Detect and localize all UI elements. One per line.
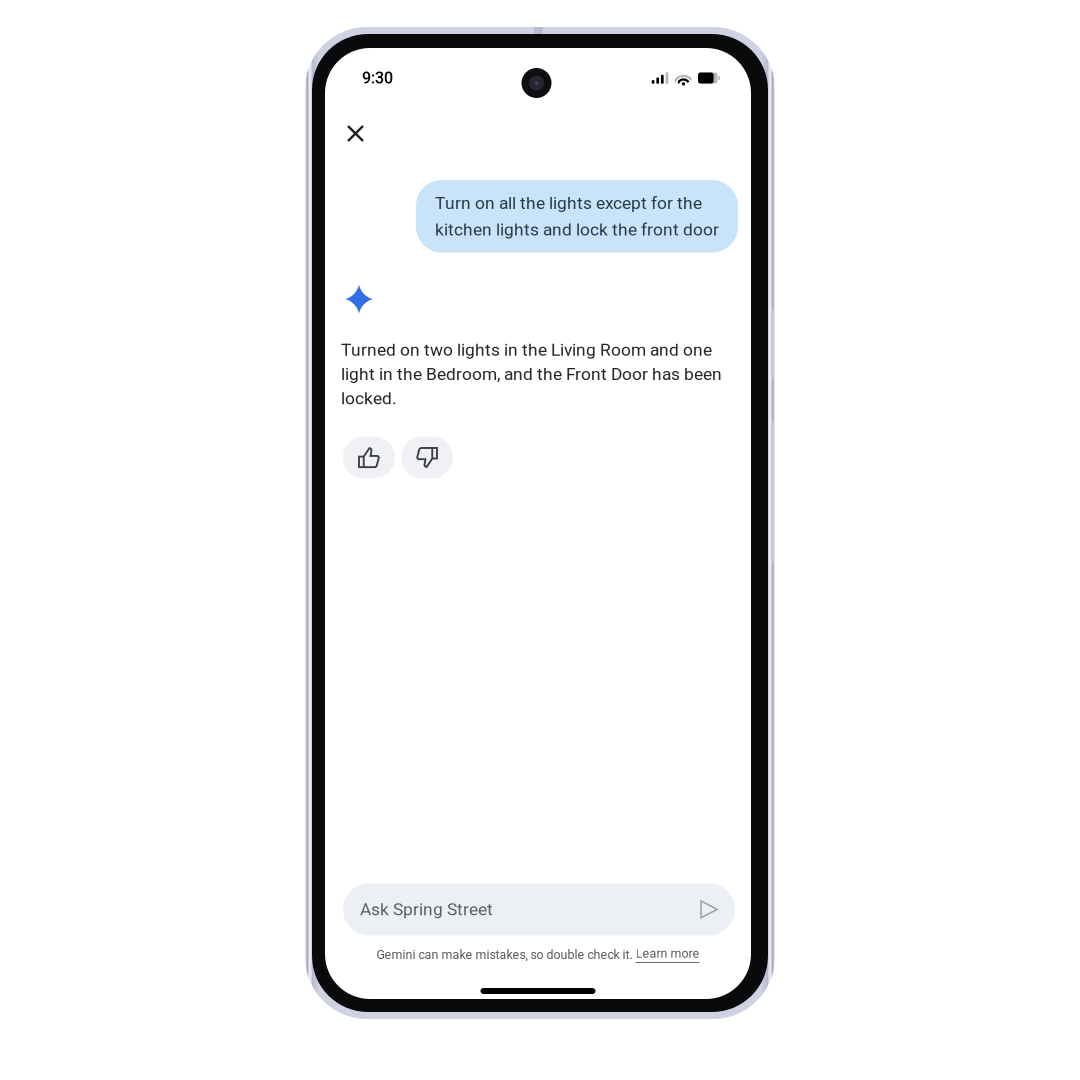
button[interactable]: Close — [338, 116, 373, 151]
staticText: Ask Spring Street — [360, 899, 493, 919]
button[interactable]: Good response — [343, 437, 395, 479]
staticText: Turn on all the lights except for the ki… — [435, 193, 719, 240]
button[interactable]: Ask Spring Street — [343, 883, 735, 935]
staticText: 9:30 — [362, 69, 393, 87]
staticText: Gemini can make mistakes, so double chec… — [376, 947, 632, 962]
staticText: Turned on two lights in the Living Room … — [341, 340, 722, 408]
button[interactable]: Bad response — [401, 437, 453, 479]
button[interactable]: Learn more — [635, 946, 699, 963]
staticText: Learn more — [635, 946, 699, 961]
